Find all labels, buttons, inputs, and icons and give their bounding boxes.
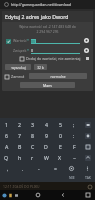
button[interactable]: ; [67, 119, 81, 130]
staticText: 1 [5, 121, 8, 128]
staticText: 5 [59, 121, 62, 128]
button[interactable]: E [53, 141, 67, 152]
staticText: Dodaj do wartości, nie zamieniaj [26, 56, 81, 61]
button[interactable]: 5 [53, 119, 67, 130]
staticText: * [27, 38, 29, 43]
staticText: Q [4, 154, 9, 161]
button[interactable]: NIE [69, 175, 75, 180]
staticText: F [73, 143, 76, 150]
staticText: - [38, 165, 40, 172]
staticText: A [5, 143, 9, 150]
button[interactable]: Więcej [79, 163, 95, 174]
staticText: : [73, 132, 75, 139]
button[interactable]: 00 [31, 38, 80, 44]
button[interactable]: Camera [81, 130, 95, 141]
button[interactable]: 6 [0, 130, 13, 141]
staticText: . [22, 165, 24, 172]
staticText: 4 [45, 121, 48, 128]
button[interactable]: normalne [29, 73, 87, 79]
staticText: * [27, 48, 29, 53]
staticText: 0 [59, 132, 62, 139]
button[interactable]: Backspace [81, 119, 95, 130]
button[interactable]: - [31, 163, 47, 174]
button[interactable]: X [53, 152, 67, 163]
staticText: B [18, 143, 22, 150]
button[interactable]: A [0, 141, 13, 152]
staticText: ; [73, 121, 75, 128]
staticText: W [44, 154, 49, 161]
staticText: 7 [18, 132, 21, 139]
button[interactable]: ~ [67, 152, 81, 163]
staticText: 9 [45, 132, 48, 139]
button[interactable]: Shift [81, 152, 95, 163]
staticText: 3 [31, 121, 34, 128]
button[interactable]: TAK [85, 175, 91, 180]
staticText: h [18, 154, 22, 161]
button[interactable]: USB [8, 193, 13, 198]
button[interactable]: Podgląd [63, 163, 79, 174]
button[interactable]: Ekran główny [33, 190, 43, 200]
staticText: , [7, 165, 9, 172]
button[interactable]: 3 [26, 119, 39, 130]
staticText: 2 294 967 295 [36, 29, 59, 34]
button[interactable]: Zamroź [5, 74, 25, 79]
button[interactable]: . [15, 163, 31, 174]
staticText: 00 [31, 39, 36, 43]
button[interactable]: 4 [39, 119, 53, 130]
staticText: 6 [5, 132, 8, 139]
button[interactable]: Symbols [81, 141, 95, 152]
button[interactable]: Ostatnie [83, 190, 93, 200]
staticText: http://gamequardian.net/download [11, 2, 91, 7]
button[interactable]: 7 [13, 130, 26, 141]
button[interactable]: 9 [39, 130, 53, 141]
button[interactable]: Powiadomienie [2, 193, 7, 198]
button[interactable]: W [39, 152, 53, 163]
staticText: Mam [43, 83, 52, 88]
staticText: 2 [18, 121, 21, 128]
staticText: E [59, 143, 62, 150]
button[interactable]: 8 [26, 130, 39, 141]
button[interactable]: Wstecz [58, 190, 68, 200]
staticText: Zamroź [11, 74, 25, 79]
button[interactable]: h [13, 152, 26, 163]
button[interactable]: 0 [31, 48, 80, 54]
staticText: Wpisz wartość od -2 147 483 648 do [19, 24, 76, 29]
button[interactable]: 2 [13, 119, 26, 130]
button[interactable]: http://gamequardian.net/download [0, 0, 95, 9]
button[interactable]: , [0, 163, 15, 174]
staticText: Wartość [13, 38, 27, 43]
staticText: ~ [73, 154, 76, 161]
button[interactable]: Mam [20, 82, 75, 88]
staticText: Związek [13, 48, 27, 53]
staticText: 0 [31, 48, 34, 53]
button[interactable]: wyszukuj [5, 64, 31, 70]
button[interactable]: = [47, 163, 63, 174]
staticText: 12:11 ZGŁOŚ DO PLIKU [3, 184, 40, 189]
staticText: r [31, 154, 34, 161]
button[interactable]: Dodaj do wartości, nie zamieniaj [20, 56, 89, 61]
staticText: wyszukuj [11, 65, 26, 69]
button[interactable]: D [39, 141, 53, 152]
button[interactable]: 32 b [34, 64, 47, 70]
button[interactable]: Pamięć [14, 193, 19, 198]
button[interactable]: r [26, 152, 39, 163]
button[interactable]: : [67, 130, 81, 141]
staticText: D [44, 143, 48, 150]
button[interactable]: 0 [53, 130, 67, 141]
staticText: 8 [31, 132, 34, 139]
button[interactable]: Opcje [83, 47, 90, 54]
button[interactable]: F [67, 141, 81, 152]
button[interactable]: B [13, 141, 26, 152]
button[interactable]: Opcje [83, 37, 90, 44]
staticText: C [31, 143, 35, 150]
button[interactable]: 1 [0, 119, 13, 130]
staticText: Edytuj 2 adres jako Dword [5, 13, 69, 20]
button[interactable] [6, 39, 11, 44]
staticText: normalne [50, 74, 66, 78]
button[interactable]: C [26, 141, 39, 152]
staticText: 32 b [37, 65, 44, 69]
staticText: = [54, 165, 57, 172]
staticText: X [58, 154, 62, 161]
button[interactable]: Q [0, 152, 13, 163]
